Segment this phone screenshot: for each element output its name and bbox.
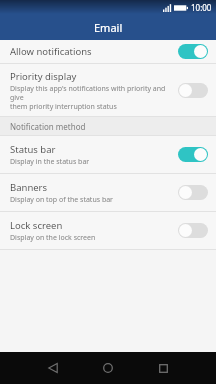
staticText: Display in the status bar [10, 157, 90, 167]
staticText: Banners [10, 181, 48, 194]
staticText: Allow notifications [10, 45, 92, 58]
staticText: Priority display [10, 70, 77, 83]
button[interactable]: Lock screen [0, 212, 216, 249]
button[interactable]: Status bar [0, 136, 216, 173]
button[interactable]: Home [95, 355, 121, 381]
button[interactable]: Banners [0, 174, 216, 211]
staticText: 10:00 [191, 2, 212, 13]
staticText: Email [94, 20, 123, 35]
staticText: Display on the lock screen [10, 233, 96, 243]
staticText: Lock screen [10, 219, 63, 232]
staticText: Status bar [10, 143, 56, 156]
staticText: Display this app's notifications with pr… [10, 84, 172, 111]
staticText: Display on top of the status bar [10, 195, 114, 205]
staticText: Notification method [10, 121, 86, 132]
button[interactable]: Recent apps [150, 355, 176, 381]
button[interactable]: Allow notifications [0, 40, 216, 63]
button[interactable]: Back [40, 355, 66, 381]
button[interactable]: Priority display [0, 64, 216, 116]
